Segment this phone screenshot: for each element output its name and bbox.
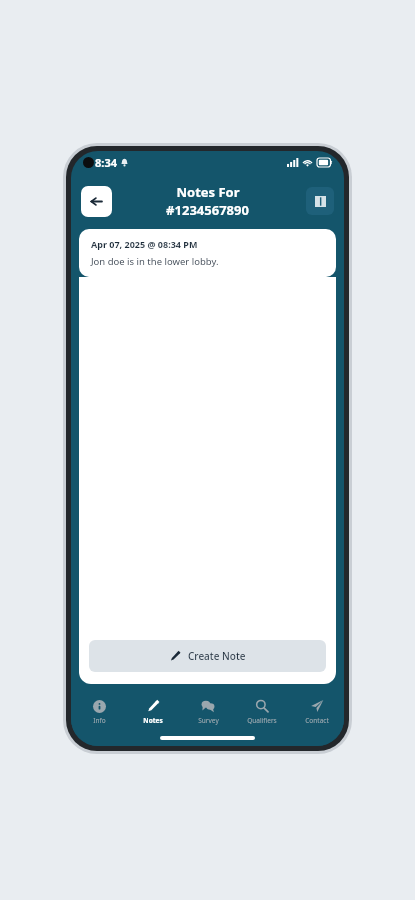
button[interactable]: Qualifiers <box>235 697 289 727</box>
staticText: Contact <box>305 716 329 725</box>
button[interactable]: Back <box>81 186 112 217</box>
staticText: 8:34 <box>95 155 117 170</box>
button[interactable]: Contact <box>290 697 344 727</box>
staticText: Notes <box>143 716 163 725</box>
button[interactable]: Apr 07, 2025 @ 08:34 PM <box>79 229 336 277</box>
staticText: Info <box>93 716 106 725</box>
button[interactable]: Survey <box>181 697 235 727</box>
staticText: Notes For <box>176 183 240 201</box>
button[interactable]: Notes <box>126 697 180 727</box>
staticText: #1234567890 <box>166 201 249 219</box>
button[interactable]: Menu <box>306 187 334 215</box>
staticText: Apr 07, 2025 @ 08:34 PM <box>91 238 198 250</box>
staticText: Jon doe is in the lower lobby. <box>91 255 219 268</box>
button[interactable]: Create Note <box>89 640 326 672</box>
button[interactable]: Info <box>72 698 126 727</box>
staticText: Qualifiers <box>247 716 277 725</box>
staticText: Survey <box>198 716 219 725</box>
staticText: Create Note <box>188 649 246 663</box>
